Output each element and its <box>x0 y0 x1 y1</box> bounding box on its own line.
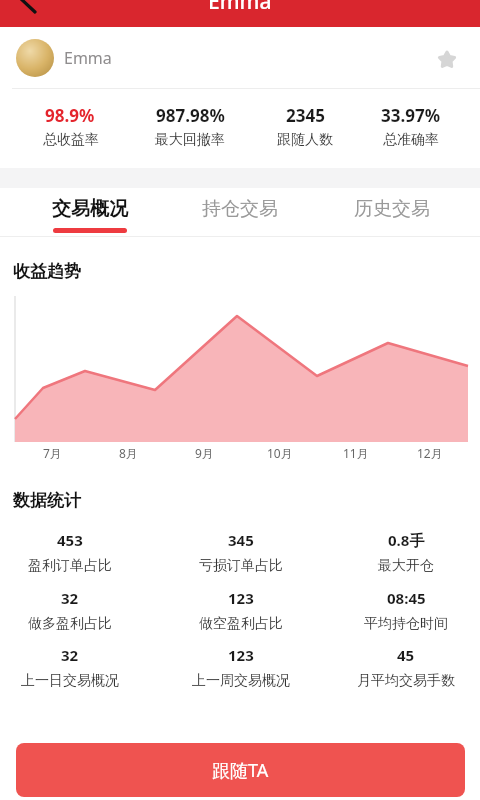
staticText: 32 <box>61 588 79 608</box>
staticText: Emma <box>64 47 112 69</box>
button[interactable]: Emma <box>0 0 480 27</box>
staticText: 33.97% <box>381 104 441 127</box>
staticText: 2345 <box>286 104 325 127</box>
staticText: Emma <box>208 0 272 14</box>
button[interactable]: 跟随TA <box>16 743 465 797</box>
staticText: 跟随TA <box>212 758 269 783</box>
button[interactable]: 交易概况 <box>25 188 155 229</box>
staticText: 453 <box>57 530 83 550</box>
staticText: 10月 <box>267 445 293 461</box>
staticText: 数据统计 <box>13 490 81 511</box>
staticText: 45 <box>397 645 415 665</box>
staticText: 做空盈利占比 <box>199 615 283 633</box>
staticText: 持仓交易 <box>202 197 278 221</box>
staticText: 12月 <box>417 445 443 461</box>
staticText: 32 <box>61 645 79 665</box>
staticText: 跟随人数 <box>277 131 333 149</box>
staticText: 0.8手 <box>388 530 425 550</box>
staticText: 08:45 <box>387 588 426 608</box>
staticText: 123 <box>228 588 254 608</box>
staticText: 交易概况 <box>52 197 128 221</box>
staticText: 历史交易 <box>354 197 430 221</box>
staticText: 做多盈利占比 <box>28 615 112 633</box>
staticText: 月平均交易手数 <box>357 672 455 690</box>
staticText: 8月 <box>119 445 138 461</box>
staticText: 盈利订单占比 <box>28 557 112 575</box>
staticText: 平均持仓时间 <box>364 615 448 633</box>
staticText: 总收益率 <box>43 131 99 149</box>
staticText: 7月 <box>43 445 62 461</box>
staticText: 987.98% <box>156 104 225 127</box>
staticText: 最大开仓 <box>378 557 434 575</box>
staticText: 11月 <box>343 445 369 461</box>
staticText: 总准确率 <box>383 131 439 149</box>
staticText: 收益趋势 <box>13 261 81 282</box>
staticText: 亏损订单占比 <box>199 557 283 575</box>
button[interactable]: Emma <box>0 28 480 88</box>
staticText: 最大回撤率 <box>155 131 225 149</box>
button[interactable]: 持仓交易 <box>175 188 305 229</box>
staticText: 123 <box>228 645 254 665</box>
staticText: 345 <box>228 530 254 550</box>
staticText: 9月 <box>195 445 214 461</box>
button[interactable]: 历史交易 <box>327 188 457 229</box>
staticText: 98.9% <box>45 104 95 127</box>
staticText: 上一周交易概况 <box>192 672 290 690</box>
staticText: 上一日交易概况 <box>21 672 119 690</box>
